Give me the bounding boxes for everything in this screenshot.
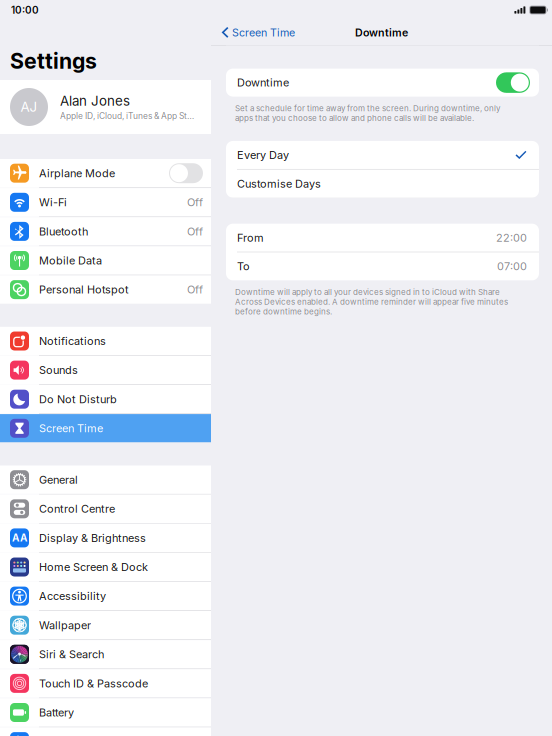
staticText: Every Day	[237, 148, 289, 161]
staticText: Mobile Data	[39, 254, 102, 267]
staticText: To	[237, 260, 250, 273]
staticText: Customise Days	[237, 177, 321, 190]
staticText: Set a schedule for time away from the sc…	[235, 104, 500, 123]
button[interactable]: Privacy	[0, 727, 211, 736]
button[interactable]: Do Not Disturb	[0, 385, 211, 413]
button[interactable]: Wallpaper	[0, 611, 211, 639]
staticText: Battery	[39, 706, 74, 719]
staticText: AA	[12, 532, 27, 544]
staticText: Display & Brightness	[39, 531, 146, 544]
button[interactable]: Touch ID & Passcode	[0, 669, 211, 698]
button[interactable]: Downtime toggle	[496, 72, 530, 93]
staticText: Downtime	[237, 76, 289, 89]
staticText: 07:00	[497, 260, 527, 273]
button[interactable]: General	[0, 465, 211, 494]
button[interactable]: Notifications	[0, 327, 211, 355]
button[interactable]: Accessibility	[0, 582, 211, 610]
staticText: Alan Jones	[60, 93, 130, 109]
staticText: Off	[187, 225, 203, 238]
button[interactable]: Mobile Data	[0, 246, 211, 275]
staticText: Wi-Fi	[39, 196, 67, 209]
button[interactable]: Wi-Fi	[0, 188, 211, 216]
button[interactable]: Battery	[0, 698, 211, 727]
staticText: Airplane Mode	[39, 167, 115, 180]
button[interactable]: Personal Hotspot	[0, 275, 211, 304]
staticText: Siri & Search	[39, 648, 104, 661]
staticText: Home Screen & Dock	[39, 560, 148, 574]
button[interactable]: Siri & Search	[0, 640, 211, 668]
button[interactable]: Screen Time	[211, 20, 301, 45]
staticText: Downtime	[355, 26, 408, 39]
button[interactable]: Home Screen & Dock	[0, 553, 211, 581]
staticText: Wallpaper	[39, 619, 91, 632]
button[interactable]: AJ	[0, 80, 211, 134]
staticText: Apple ID, iCloud, iTunes & App St…	[60, 111, 194, 121]
staticText: Settings	[10, 48, 97, 74]
staticText: General	[39, 473, 78, 486]
staticText: 22:00	[496, 231, 527, 244]
button[interactable]: Control Centre	[0, 495, 211, 523]
button[interactable]: Customise Days	[226, 170, 539, 198]
button[interactable]: Bluetooth	[0, 217, 211, 246]
staticText: Control Centre	[39, 502, 115, 515]
staticText: 10:00	[11, 4, 39, 16]
staticText: Downtime will apply to all your devices …	[235, 287, 508, 316]
staticText: AJ	[20, 99, 37, 115]
staticText: Notifications	[39, 334, 106, 348]
staticText: Off	[187, 283, 203, 296]
staticText: Screen Time	[39, 422, 103, 435]
button[interactable]: From	[226, 224, 539, 252]
staticText: Sounds	[39, 363, 78, 377]
staticText: From	[237, 231, 264, 244]
staticText: Off	[187, 196, 203, 209]
button[interactable]: Airplane Mode	[0, 159, 211, 187]
staticText: Touch ID & Passcode	[39, 677, 148, 690]
staticText: Do Not Disturb	[39, 393, 117, 406]
button[interactable]: Screen Time	[0, 414, 211, 442]
button[interactable]: AA	[0, 524, 211, 552]
staticText: Accessibility	[39, 589, 106, 603]
button[interactable]: To	[226, 252, 539, 280]
button[interactable]: Every Day	[226, 141, 539, 169]
staticText: Bluetooth	[39, 225, 88, 238]
staticText: Personal Hotspot	[39, 283, 129, 296]
button[interactable]: Sounds	[0, 356, 211, 384]
staticText: Screen Time	[232, 26, 295, 39]
